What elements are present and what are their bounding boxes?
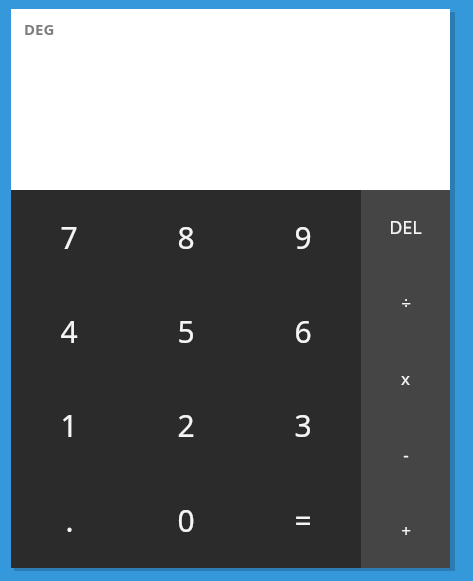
button[interactable]: . [11, 473, 127, 568]
staticText: + [401, 519, 411, 542]
button[interactable]: 5 [127, 284, 244, 378]
staticText: 0 [177, 500, 195, 541]
staticText: DEL [389, 215, 422, 240]
button[interactable]: 6 [244, 284, 361, 378]
button[interactable]: Subtract [361, 416, 450, 492]
button[interactable]: Divide [361, 265, 450, 340]
staticText: - [403, 443, 409, 466]
staticText: 2 [177, 405, 195, 446]
button[interactable]: 0 [127, 473, 244, 568]
staticText: ÷ [401, 291, 411, 314]
staticText: 6 [294, 311, 312, 352]
button[interactable]: = [244, 473, 361, 568]
button[interactable]: 7 [11, 190, 127, 284]
button[interactable]: Add [361, 492, 450, 568]
button[interactable]: 3 [244, 378, 361, 473]
button[interactable]: Multiply [361, 340, 450, 416]
staticText: 3 [294, 405, 312, 446]
button[interactable]: Delete [361, 190, 450, 265]
button[interactable]: DEG [24, 19, 55, 39]
button[interactable]: 2 [127, 378, 244, 473]
staticText: 5 [177, 311, 195, 352]
staticText: 7 [60, 217, 78, 258]
staticText: . [65, 500, 74, 541]
button[interactable]: 4 [11, 284, 127, 378]
staticText: 8 [177, 217, 195, 258]
staticText: 1 [60, 405, 78, 446]
staticText: x [401, 367, 410, 390]
button[interactable]: 8 [127, 190, 244, 284]
staticText: = [294, 500, 312, 541]
button[interactable]: 9 [244, 190, 361, 284]
staticText: 4 [60, 311, 78, 352]
button[interactable]: 1 [11, 378, 127, 473]
staticText: 9 [294, 217, 312, 258]
